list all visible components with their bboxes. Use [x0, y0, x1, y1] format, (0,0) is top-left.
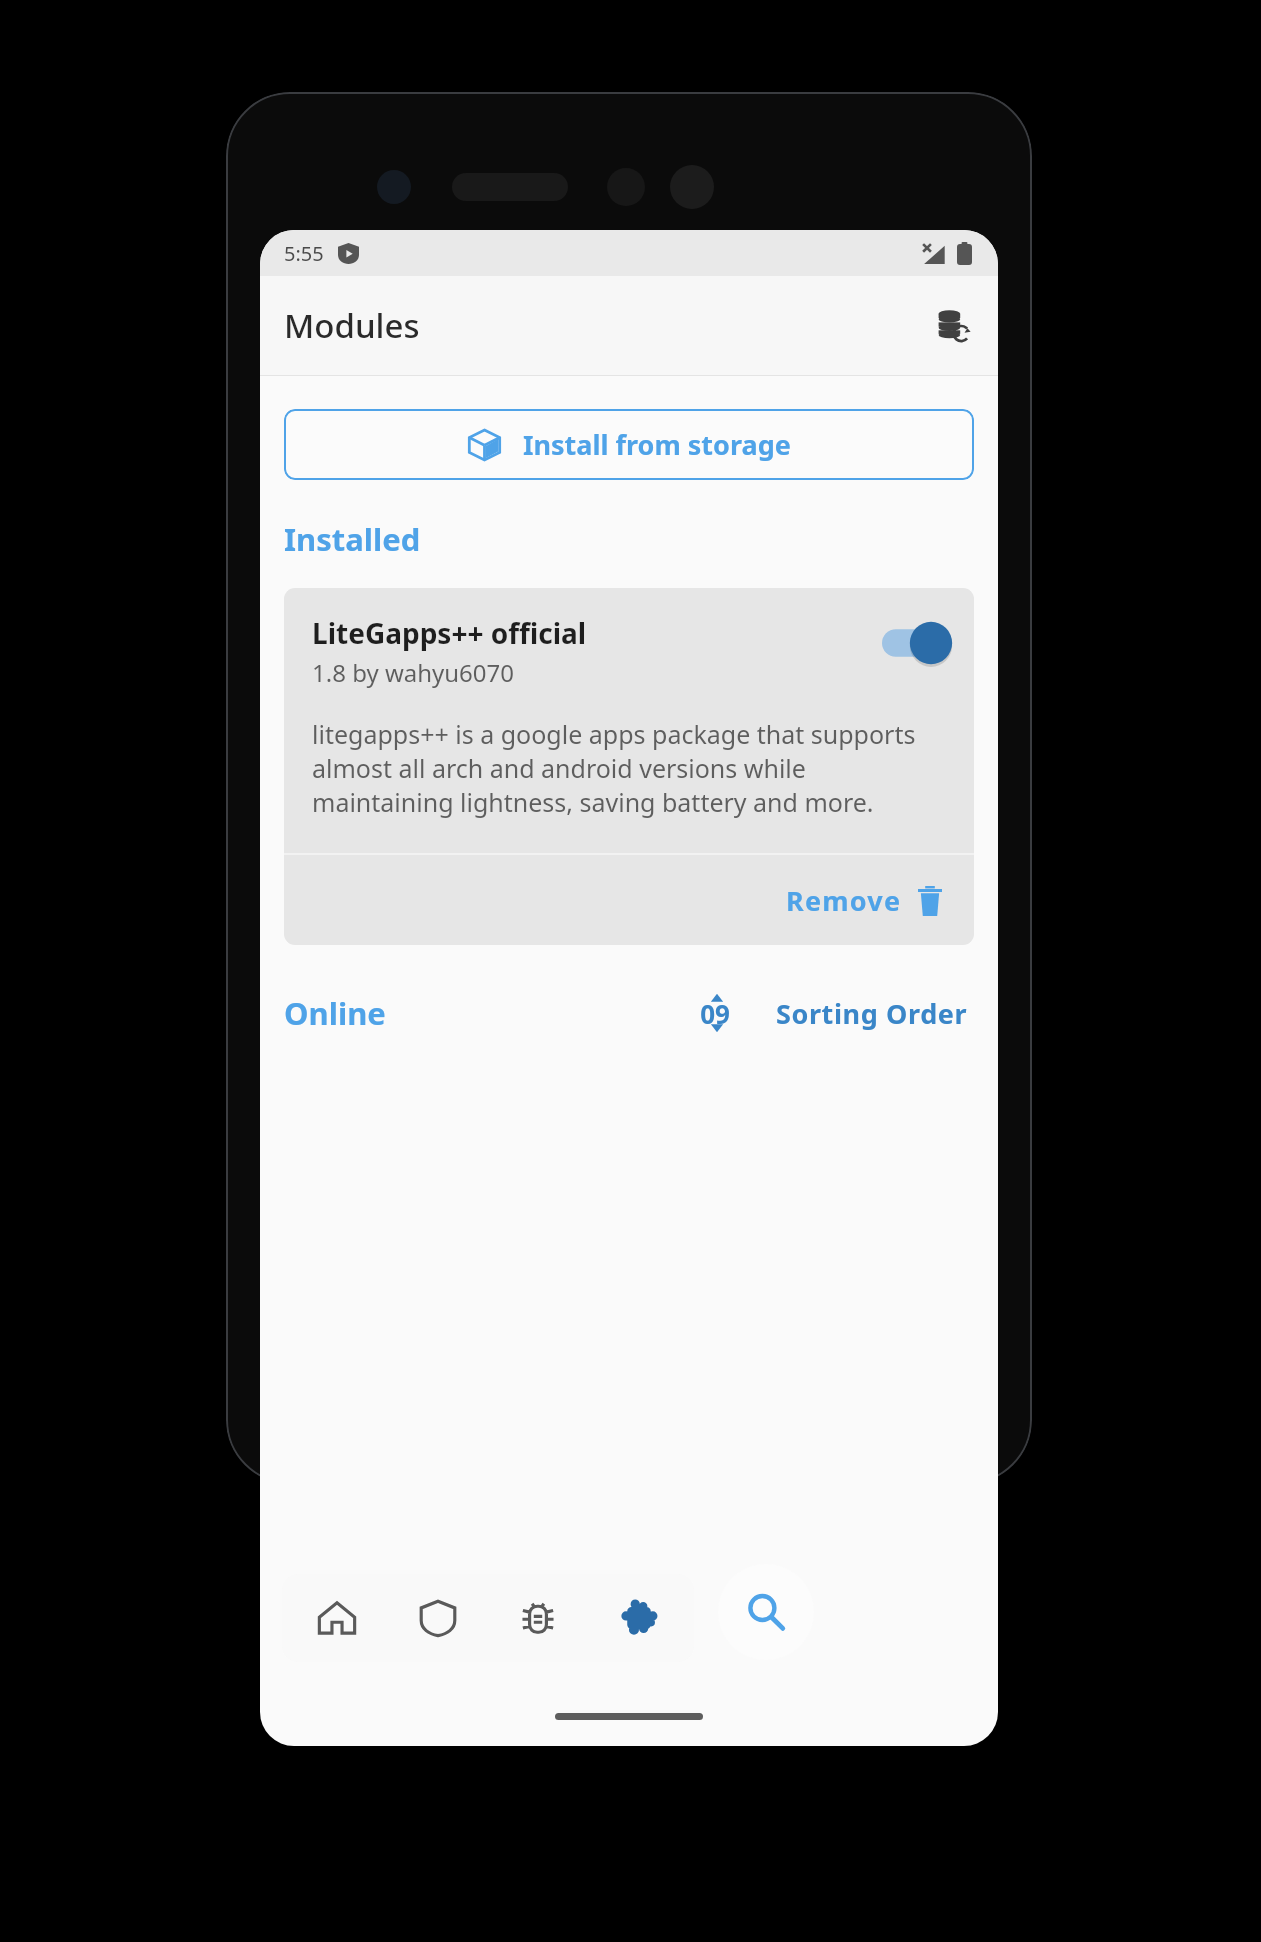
button[interactable]: Toggle module: [882, 620, 952, 666]
button[interactable]: Security: [392, 1574, 484, 1662]
staticText: Remove: [786, 882, 902, 919]
staticText: 5:55: [284, 240, 324, 267]
button[interactable]: LiteGapps++ official: [284, 588, 974, 853]
button[interactable]: Refresh repositories: [922, 295, 984, 357]
button[interactable]: Search: [718, 1564, 814, 1660]
staticText: Modules: [284, 303, 420, 348]
staticText: 1.8 by wahyu6070: [312, 656, 515, 689]
staticText: Sorting Order: [776, 995, 968, 1032]
staticText: Installed: [284, 518, 421, 560]
staticText: Online: [284, 992, 386, 1034]
staticText: 09: [700, 996, 730, 1031]
button[interactable]: Logs: [492, 1574, 584, 1662]
button[interactable]: Home: [291, 1574, 383, 1662]
staticText: LiteGapps++ official: [312, 614, 587, 652]
button[interactable]: Modules: [593, 1574, 685, 1662]
button[interactable]: Install from storage: [284, 409, 974, 480]
staticText: litegapps++ is a google apps package tha…: [312, 717, 944, 819]
button[interactable]: 09: [694, 987, 974, 1039]
button[interactable]: Remove: [776, 876, 952, 925]
staticText: Install from storage: [523, 426, 791, 463]
